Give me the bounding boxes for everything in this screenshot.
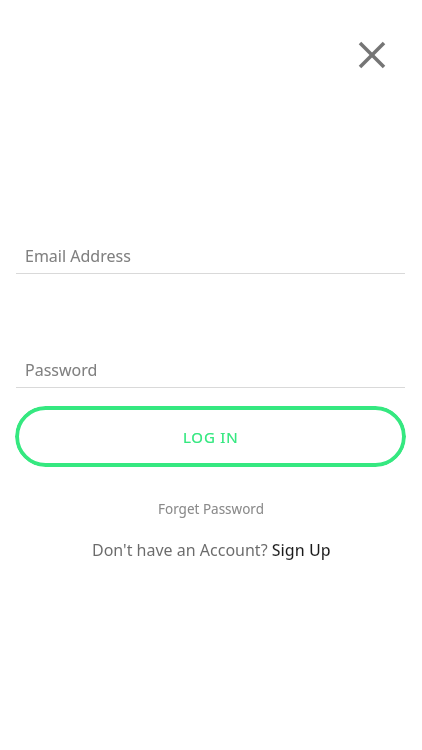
staticText: LOG IN	[183, 427, 239, 447]
staticText: Forget Password	[158, 500, 264, 518]
button[interactable]: Forget Password	[0, 498, 422, 520]
button[interactable]	[348, 31, 396, 79]
button[interactable]: Don't have an Account? Sign Up	[0, 538, 422, 562]
button[interactable]: Password	[16, 352, 405, 388]
button[interactable]: Email Address	[16, 238, 405, 274]
staticText: Don't have an Account? Sign Up	[92, 539, 331, 561]
button[interactable]: LOG IN	[15, 406, 406, 467]
staticText: Email Address	[25, 245, 131, 267]
staticText: Password	[25, 359, 98, 381]
